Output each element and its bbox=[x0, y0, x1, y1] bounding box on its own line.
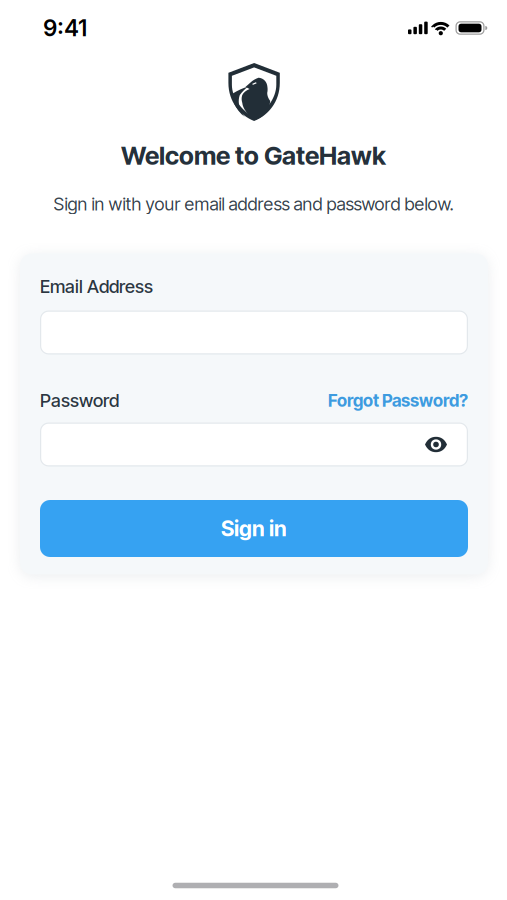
staticText: Password bbox=[40, 389, 119, 411]
staticText: 9:41 bbox=[43, 15, 87, 41]
staticText: Email Address bbox=[40, 275, 153, 297]
button[interactable]: Forgot Password? bbox=[328, 390, 468, 411]
staticText: Forgot Password? bbox=[328, 390, 468, 411]
button[interactable] bbox=[40, 310, 468, 354]
button[interactable] bbox=[40, 422, 468, 466]
staticText: Welcome to GateHawk bbox=[121, 140, 386, 171]
staticText: Sign in with your email address and pass… bbox=[53, 193, 453, 215]
button[interactable]: Sign in bbox=[40, 500, 468, 557]
staticText: Sign in bbox=[221, 516, 287, 541]
